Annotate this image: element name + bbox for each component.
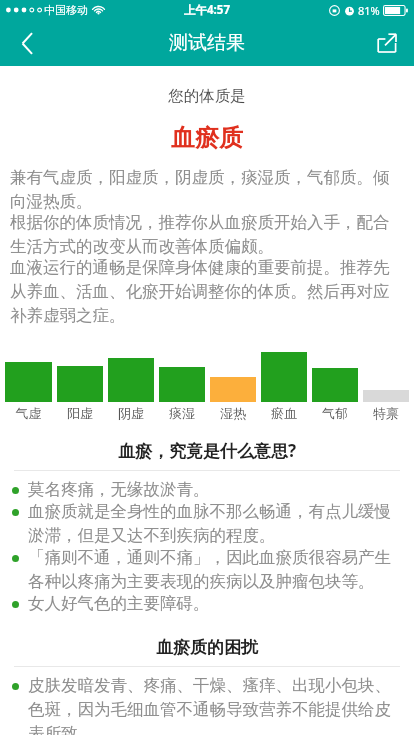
staticText: 湿热 — [210, 405, 256, 421]
staticText: 特禀 — [363, 405, 409, 421]
staticText: 血瘀质就是全身性的血脉不那么畅通，有点儿缓慢淤滞，但是又达不到疾病的程度。 — [28, 501, 404, 546]
staticText: 兼有气虚质，阳虚质，阴虚质，痰湿质，气郁质。倾向湿热质。 — [10, 167, 404, 212]
staticText: 血瘀，究竟是什么意思? — [0, 439, 414, 462]
staticText: 瘀血 — [261, 405, 307, 421]
staticText: 您的体质是 — [0, 86, 414, 106]
staticText: 血液运行的通畅是保障身体健康的重要前提。推荐先从养血、活血、化瘀开始调整你的体质… — [10, 257, 404, 326]
staticText: 痰湿 — [159, 405, 205, 421]
staticText: 阴虚 — [108, 405, 154, 421]
staticText: 81% — [358, 3, 380, 18]
staticText: 阳虚 — [57, 405, 103, 421]
button[interactable]: Back — [0, 20, 54, 66]
staticText: 血瘀质 — [0, 123, 414, 153]
staticText: 血瘀质的困扰 — [0, 637, 414, 658]
staticText: 莫名疼痛，无缘故淤青。 — [28, 479, 404, 500]
staticText: 上午4:57 — [184, 2, 230, 18]
staticText: 气郁 — [312, 405, 358, 421]
staticText: 「痛则不通，通则不痛」，因此血瘀质很容易产生各种以疼痛为主要表现的疾病以及肿瘤包… — [28, 547, 404, 592]
staticText: 根据你的体质情况，推荐你从血瘀质开始入手，配合生活方式的改变从而改善体质偏颇。 — [10, 212, 404, 257]
staticText: 中国移动 — [44, 3, 88, 17]
staticText: 气虚 — [5, 405, 52, 421]
button[interactable]: Share — [360, 20, 414, 66]
staticText: 测试结果 — [169, 31, 245, 55]
staticText: 女人好气色的主要障碍。 — [28, 593, 404, 614]
staticText: 皮肤发暗发青、疼痛、干燥、瘙痒、出现小包块、色斑，因为毛细血管不通畅导致营养不能… — [28, 675, 404, 735]
